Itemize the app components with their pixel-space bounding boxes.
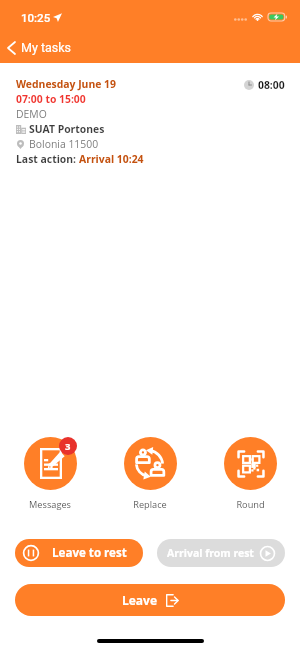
staticText: Arrival from rest <box>167 546 254 560</box>
button[interactable]: Arrival from rest <box>157 539 285 567</box>
staticText: Wednesday June 19 <box>16 77 116 91</box>
staticText: 3 <box>65 440 71 453</box>
staticText: Replace <box>133 498 167 511</box>
staticText: 08:00 <box>258 78 285 92</box>
button[interactable]: Leave to rest <box>15 539 143 567</box>
staticText: Leave to rest <box>52 545 127 561</box>
button[interactable]: Leave <box>15 584 285 616</box>
staticText: Messages <box>29 498 71 511</box>
staticText: Round <box>236 498 265 511</box>
button[interactable]: Round <box>224 437 277 490</box>
staticText: Arrival 10:24 <box>79 152 144 166</box>
staticText: Leave <box>122 592 158 608</box>
staticText: My tasks <box>21 40 72 55</box>
staticText: DEMO <box>16 107 47 121</box>
staticText: 10:25 <box>21 11 51 24</box>
button[interactable]: My tasks <box>0 32 300 63</box>
staticText: SUAT Portones <box>29 122 105 136</box>
staticText: Bolonia 11500 <box>29 137 99 151</box>
staticText: Last action: <box>16 152 79 166</box>
button[interactable]: Replace <box>124 437 177 490</box>
button[interactable]: Messages <box>24 437 77 490</box>
staticText: 07:00 to 15:00 <box>16 92 86 106</box>
